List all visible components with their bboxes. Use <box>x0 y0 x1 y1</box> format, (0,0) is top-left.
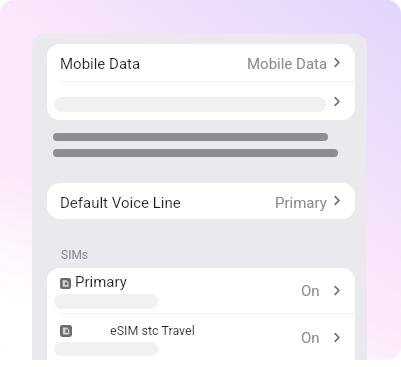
button[interactable]: Default Voice Line <box>47 183 355 219</box>
staticText: Primary <box>75 273 127 291</box>
button[interactable] <box>47 44 355 81</box>
button[interactable] <box>47 268 355 313</box>
staticText: Primary <box>275 194 327 212</box>
staticText: SIMs <box>61 248 89 262</box>
button[interactable] <box>47 82 355 120</box>
staticText: Default Voice Line <box>60 194 181 212</box>
staticText: Mobile Data <box>247 55 328 73</box>
staticText: eSIM stc Travel <box>110 323 195 338</box>
staticText: Mobile Data <box>60 55 141 73</box>
staticText: On <box>301 329 320 347</box>
staticText: On <box>301 282 320 300</box>
button[interactable] <box>47 314 355 359</box>
